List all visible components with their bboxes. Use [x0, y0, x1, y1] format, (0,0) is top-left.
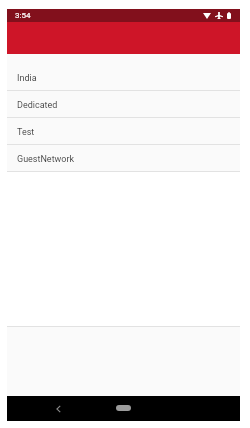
- staticText: GuestNetwork: [17, 154, 75, 165]
- button[interactable]: Test: [7, 118, 240, 145]
- staticText: 3:54: [15, 11, 31, 20]
- button[interactable]: India: [7, 64, 240, 91]
- staticText: Test: [17, 127, 35, 138]
- staticText: India: [17, 73, 37, 84]
- button[interactable]: Home: [116, 405, 131, 411]
- button[interactable]: GuestNetwork: [7, 145, 240, 172]
- button[interactable]: Dedicated: [7, 91, 240, 118]
- button[interactable]: Back: [51, 402, 65, 416]
- staticText: Dedicated: [17, 100, 58, 111]
